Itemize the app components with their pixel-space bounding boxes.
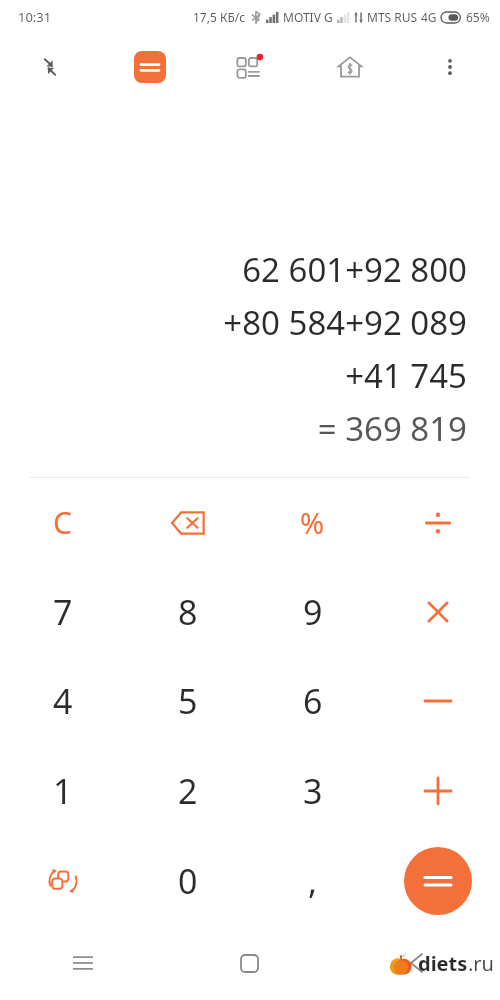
staticText: , [308, 858, 318, 904]
button[interactable]: Clear [0, 478, 125, 567]
staticText: 0 [178, 858, 198, 904]
button[interactable]: Recent apps [0, 926, 166, 1000]
button[interactable]: Back [333, 926, 500, 1000]
button[interactable]: 0 [125, 836, 250, 926]
staticText: 4G [421, 9, 437, 25]
button[interactable]: Multiply [375, 567, 500, 656]
button[interactable]: Calculator [100, 34, 200, 100]
staticText: 9 [303, 589, 323, 635]
button[interactable]: 5 [125, 656, 250, 746]
button[interactable]: 4 [0, 656, 125, 746]
staticText: 6 [303, 678, 323, 724]
staticText: 2 [178, 768, 198, 814]
staticText: diets [418, 950, 468, 977]
button[interactable]: Home [166, 926, 333, 1000]
staticText: 3 [303, 768, 323, 814]
staticText: % [300, 503, 325, 542]
button[interactable]: 2 [125, 746, 250, 836]
staticText: 8 [178, 589, 198, 635]
button[interactable]: Backspace [125, 478, 250, 567]
staticText: MTS RUS [367, 9, 418, 25]
staticText: +80 584+92 089 [223, 300, 467, 345]
button[interactable]: Equals [375, 836, 500, 926]
button[interactable]: More options [400, 34, 500, 100]
button[interactable]: Minus [375, 656, 500, 746]
button[interactable]: Unit converter [0, 836, 125, 926]
button[interactable]: Templates [200, 34, 300, 100]
button[interactable]: 1 [0, 746, 125, 836]
staticText: 7 [53, 589, 73, 635]
staticText: +41 745 [345, 353, 467, 398]
staticText: 1 [53, 768, 73, 814]
staticText: = 369 819 [317, 406, 467, 451]
staticText: 10:31 [18, 8, 52, 26]
button[interactable]: 8 [125, 567, 250, 656]
button[interactable]: Collapse [0, 34, 100, 100]
staticText: .ru [468, 950, 494, 977]
staticText: MOTIV G [283, 9, 333, 25]
button[interactable]: 7 [0, 567, 125, 656]
button[interactable]: Plus [375, 746, 500, 836]
button[interactable]: Divide [375, 478, 500, 567]
staticText: 62 601+92 800 [242, 247, 467, 292]
staticText: 17,5 КБ/с [193, 9, 246, 25]
staticText: 4 [53, 678, 73, 724]
button[interactable]: 3 [250, 746, 375, 836]
staticText: 65% [466, 9, 490, 25]
staticText: 5 [178, 678, 198, 724]
staticText: C [53, 502, 72, 543]
button[interactable]: Mortgage [300, 34, 400, 100]
button[interactable]: , [250, 836, 375, 926]
button[interactable]: 9 [250, 567, 375, 656]
button[interactable]: Percent [250, 478, 375, 567]
button[interactable]: 6 [250, 656, 375, 746]
